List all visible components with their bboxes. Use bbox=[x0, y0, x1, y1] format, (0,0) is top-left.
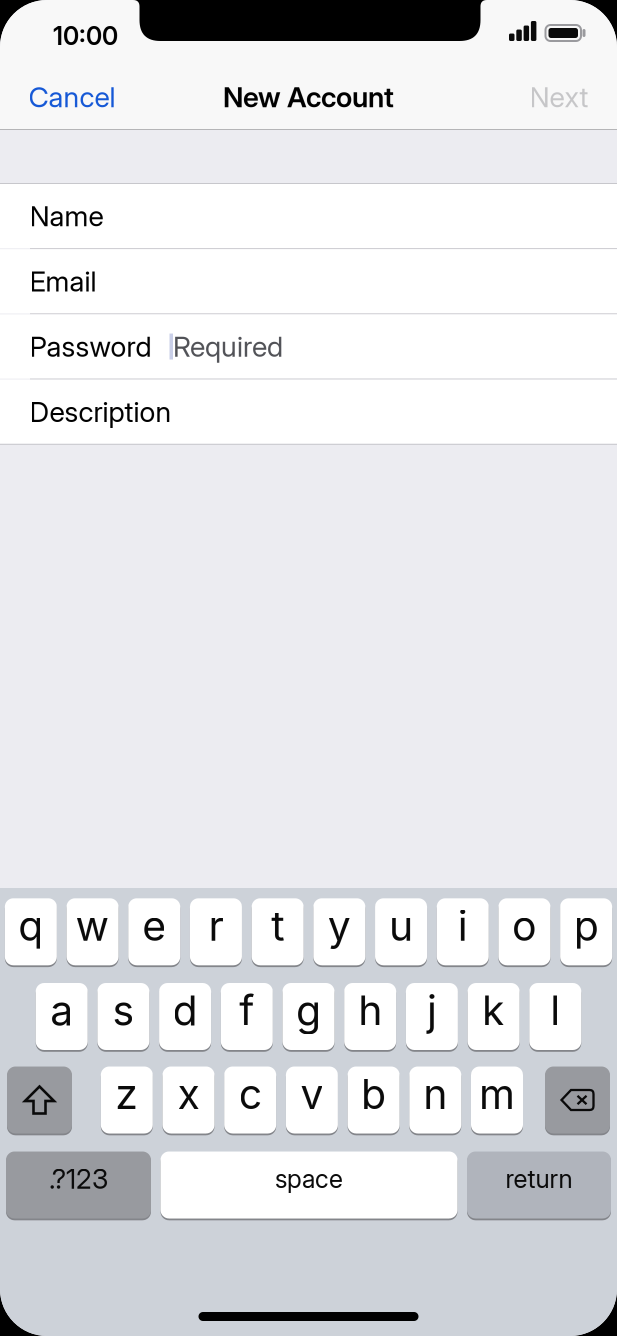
staticText: return bbox=[505, 1164, 572, 1194]
button[interactable]: l bbox=[529, 983, 581, 1050]
staticText: j bbox=[427, 986, 437, 1035]
staticText: Email bbox=[29, 265, 96, 298]
button[interactable]: .?123 bbox=[6, 1151, 151, 1218]
staticText: o bbox=[512, 902, 537, 950]
button[interactable]: Description bbox=[0, 380, 617, 444]
button[interactable]: g bbox=[282, 983, 334, 1050]
staticText: t bbox=[271, 902, 284, 950]
button[interactable]: e bbox=[128, 898, 180, 965]
button[interactable]: z bbox=[101, 1066, 153, 1133]
staticText: Password bbox=[29, 330, 151, 363]
staticText: Name bbox=[29, 200, 103, 233]
button[interactable]: h bbox=[344, 983, 396, 1050]
button[interactable]: return bbox=[467, 1151, 611, 1218]
button[interactable]: j bbox=[406, 983, 458, 1050]
button[interactable]: r bbox=[190, 898, 242, 965]
button[interactable]: a bbox=[36, 983, 88, 1050]
button[interactable]: u bbox=[375, 898, 427, 965]
staticText: a bbox=[50, 986, 73, 1035]
staticText: Cancel bbox=[28, 80, 115, 113]
button[interactable]: n bbox=[409, 1066, 461, 1133]
staticText: Required bbox=[173, 330, 283, 363]
staticText: v bbox=[300, 1070, 323, 1118]
staticText: z bbox=[115, 1070, 138, 1118]
button[interactable]: v bbox=[286, 1066, 338, 1133]
staticText: u bbox=[389, 902, 413, 950]
button[interactable]: m bbox=[471, 1066, 523, 1133]
button[interactable]: Delete bbox=[545, 1066, 610, 1133]
button[interactable]: Cancel bbox=[28, 79, 115, 115]
button[interactable]: k bbox=[468, 983, 520, 1050]
staticText: h bbox=[358, 986, 382, 1035]
staticText: g bbox=[296, 986, 321, 1035]
button[interactable]: d bbox=[159, 983, 211, 1050]
button[interactable]: w bbox=[66, 898, 118, 965]
staticText: p bbox=[574, 902, 599, 950]
button[interactable]: y bbox=[313, 898, 365, 965]
staticText: c bbox=[239, 1070, 262, 1118]
staticText: e bbox=[142, 902, 166, 950]
button[interactable]: b bbox=[348, 1066, 400, 1133]
staticText: q bbox=[18, 902, 43, 950]
button[interactable]: q bbox=[5, 898, 57, 965]
button[interactable]: o bbox=[498, 898, 550, 965]
button[interactable]: Next bbox=[529, 79, 588, 115]
staticText: b bbox=[361, 1070, 386, 1118]
button[interactable]: x bbox=[162, 1066, 214, 1133]
button[interactable]: Password bbox=[0, 314, 617, 379]
staticText: 10:00 bbox=[53, 21, 118, 51]
button[interactable]: Email bbox=[0, 249, 617, 313]
staticText: New Account bbox=[223, 80, 394, 113]
staticText: d bbox=[173, 986, 198, 1035]
button[interactable]: space bbox=[160, 1151, 457, 1218]
button[interactable]: s bbox=[97, 983, 149, 1050]
staticText: y bbox=[328, 902, 351, 950]
staticText: x bbox=[177, 1070, 199, 1118]
button[interactable]: Name bbox=[0, 184, 617, 248]
staticText: s bbox=[112, 986, 134, 1035]
staticText: Description bbox=[29, 395, 171, 428]
staticText: n bbox=[423, 1070, 447, 1118]
button[interactable]: f bbox=[221, 983, 273, 1050]
staticText: f bbox=[239, 986, 254, 1035]
staticText: space bbox=[275, 1164, 343, 1194]
button[interactable]: p bbox=[560, 898, 612, 965]
staticText: l bbox=[550, 986, 560, 1035]
staticText: k bbox=[482, 986, 505, 1035]
button[interactable]: t bbox=[252, 898, 304, 965]
staticText: Next bbox=[529, 80, 588, 113]
staticText: i bbox=[458, 902, 468, 950]
staticText: m bbox=[479, 1070, 515, 1118]
button[interactable]: i bbox=[437, 898, 489, 965]
staticText: .?123 bbox=[49, 1163, 108, 1195]
button[interactable]: Shift bbox=[7, 1066, 72, 1133]
staticText: w bbox=[75, 902, 109, 950]
staticText: r bbox=[208, 902, 223, 950]
button[interactable]: c bbox=[224, 1066, 276, 1133]
